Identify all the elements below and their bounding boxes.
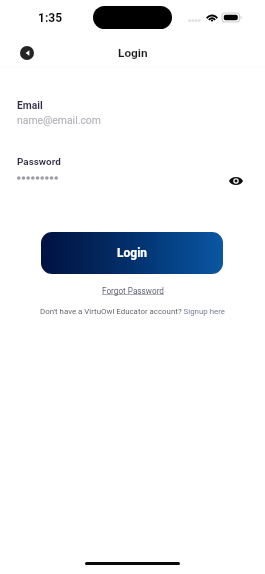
button[interactable]: Don't have a VirtuOwl Educator account? … [40,307,226,316]
staticText: Login [117,246,148,260]
staticText: Don't have a VirtuOwl Educator account? … [40,307,226,316]
button[interactable]: Forgot Password [102,286,164,296]
button[interactable]: Back [20,46,34,60]
staticText: 1:35 [38,11,63,25]
staticText: Password [17,156,61,168]
staticText: Login [118,46,148,60]
button[interactable]: Show password [226,171,246,191]
staticText: Forgot Password [102,286,164,296]
button[interactable]: Login [41,232,223,274]
staticText: Email [17,99,43,111]
staticText: name@email.com [17,114,101,126]
